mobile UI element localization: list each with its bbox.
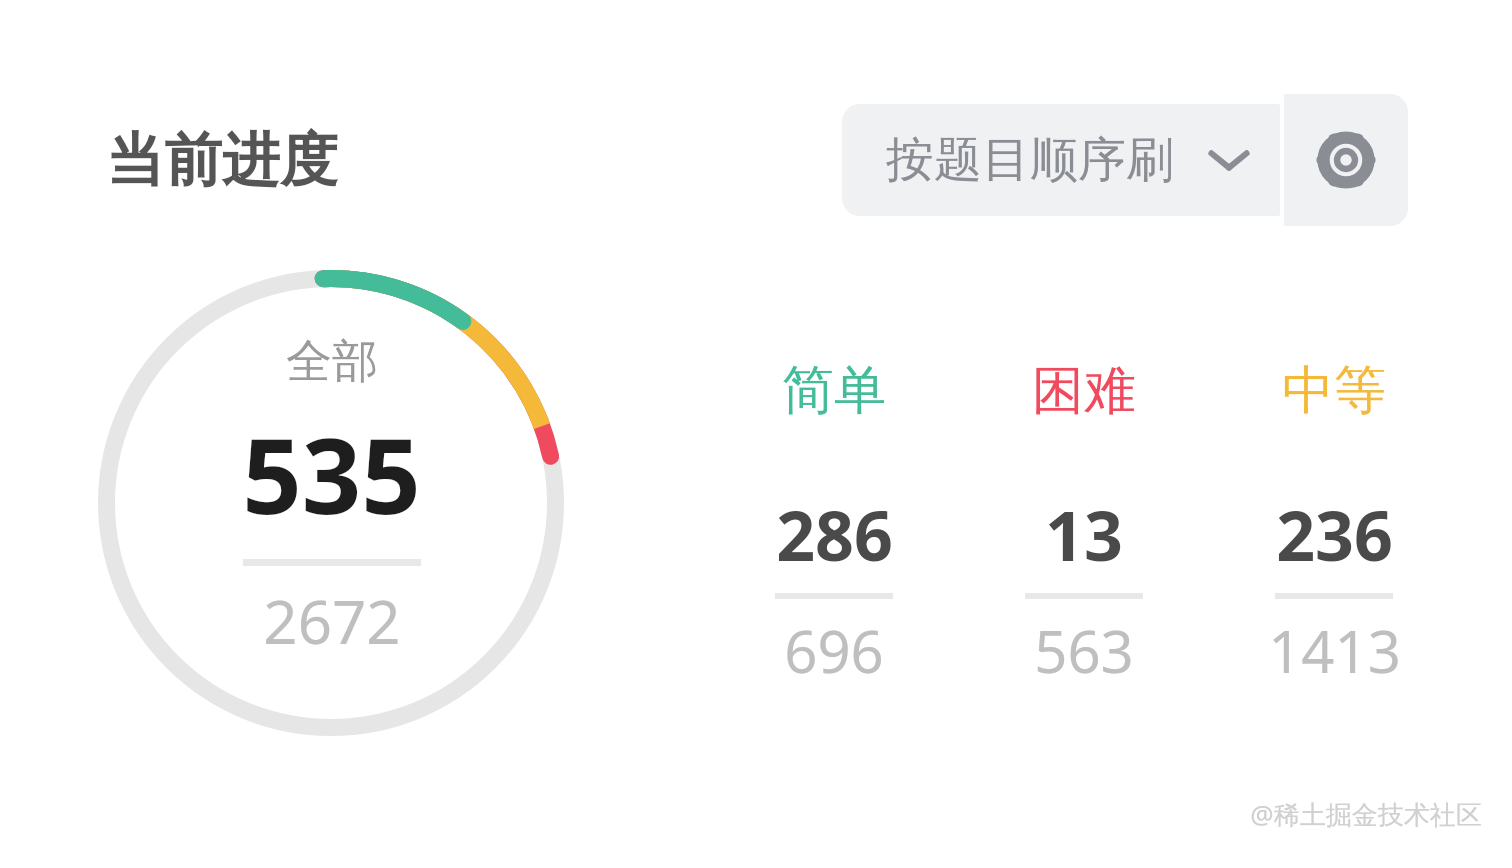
staticText: 简单: [782, 358, 886, 424]
staticText: 按题目顺序刷: [886, 130, 1174, 190]
staticText: 2672: [263, 580, 401, 662]
button[interactable]: 困难: [984, 358, 1184, 690]
staticText: 535: [242, 403, 421, 545]
staticText: 全部: [286, 333, 378, 391]
staticText: 563: [1034, 611, 1134, 690]
staticText: @稀土掘金技术社区: [1250, 796, 1482, 832]
button[interactable]: Settings: [1284, 94, 1408, 226]
staticText: 13: [1045, 488, 1123, 581]
staticText: 1413: [1268, 611, 1401, 690]
staticText: 中等: [1282, 358, 1386, 424]
button[interactable]: 按题目顺序刷: [842, 104, 1280, 216]
staticText: 困难: [1032, 358, 1136, 424]
button[interactable]: 中等: [1234, 358, 1434, 690]
staticText: 286: [776, 488, 893, 581]
staticText: 当前进度: [106, 124, 338, 197]
staticText: 236: [1276, 488, 1393, 581]
button[interactable]: 简单: [734, 358, 934, 690]
staticText: 696: [784, 611, 884, 690]
